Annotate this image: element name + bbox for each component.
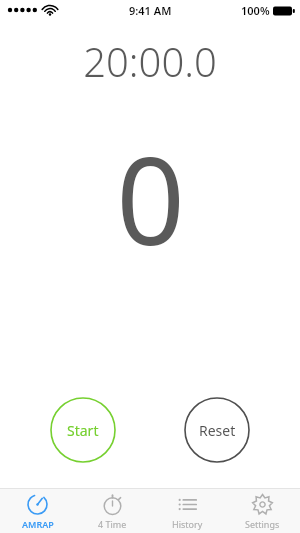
button[interactable]: AMRAP [0,489,75,533]
staticText: 20:00.0 [0,34,300,88]
staticText: Start [67,421,99,440]
button[interactable]: Reset [184,397,250,463]
staticText: 100% [241,3,270,18]
staticText: History [172,518,203,530]
staticText: Settings [245,518,280,530]
staticText: 0 [116,117,185,280]
staticText: Reset [199,421,236,440]
button[interactable]: 4 Time [75,489,150,533]
staticText: AMRAP [22,518,54,530]
staticText: 4 Time [98,518,127,530]
button[interactable]: History [150,489,225,533]
button[interactable]: Settings [225,489,300,533]
button[interactable]: Start [50,397,116,463]
staticText: 9:41 AM [129,3,172,18]
